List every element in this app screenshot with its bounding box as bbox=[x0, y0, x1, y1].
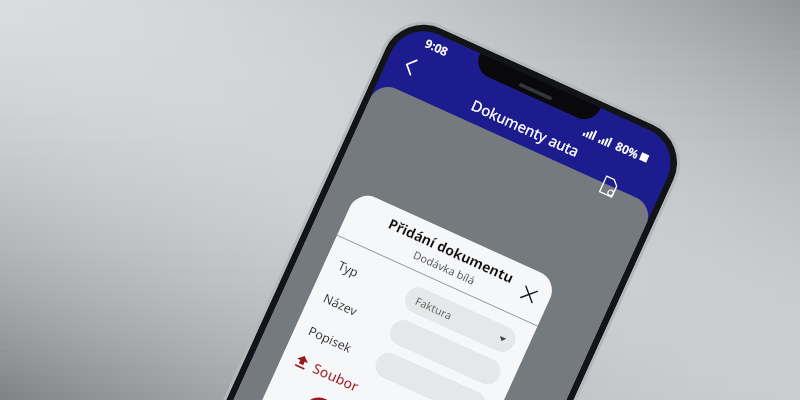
staticText: Dokumenty auta bbox=[468, 95, 582, 162]
button[interactable]: Faktura bbox=[401, 283, 520, 356]
staticText: Faktura bbox=[413, 293, 455, 323]
staticText: Popisek bbox=[306, 322, 355, 357]
staticText: Soubor bbox=[310, 358, 362, 396]
button[interactable]: Soubor bbox=[292, 350, 362, 396]
staticText: Dodávka bílá bbox=[411, 247, 477, 288]
button[interactable]: Close bbox=[511, 277, 547, 312]
staticText: 80% bbox=[613, 138, 642, 162]
staticText: Přidání dokumentu bbox=[385, 214, 517, 288]
button[interactable] bbox=[386, 316, 505, 389]
staticText: Název bbox=[321, 289, 360, 320]
staticText: Typ bbox=[335, 257, 362, 281]
button[interactable]: Back bbox=[392, 47, 429, 84]
staticText: 9:08 bbox=[423, 35, 450, 59]
button[interactable] bbox=[371, 348, 490, 400]
button[interactable]: Uložit bbox=[296, 392, 438, 400]
button[interactable]: Add document bbox=[592, 169, 625, 202]
